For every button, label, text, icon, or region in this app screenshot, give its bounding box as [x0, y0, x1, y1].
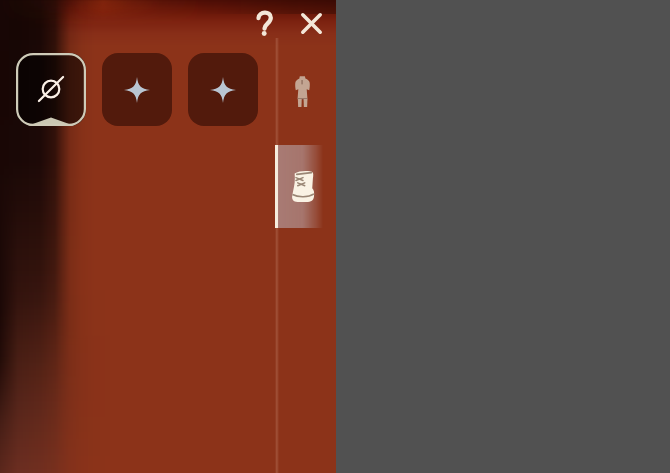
button[interactable]: Style: [188, 53, 258, 126]
button[interactable]: Style: [102, 53, 172, 126]
button[interactable]: Outfit: [278, 54, 336, 128]
button[interactable]: None: [16, 53, 86, 126]
button[interactable]: Shoes: [275, 145, 336, 228]
button[interactable]: Help: [249, 3, 279, 43]
button[interactable]: Close: [296, 8, 327, 39]
